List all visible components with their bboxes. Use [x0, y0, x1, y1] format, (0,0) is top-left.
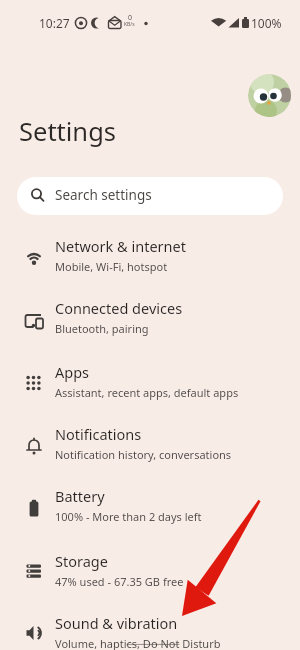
button[interactable]: Notifications — [0, 420, 300, 476]
staticText: 0 — [128, 13, 133, 23]
staticText: Battery — [55, 486, 105, 506]
button[interactable]: Search settings — [17, 177, 283, 215]
staticText: Sound & vibration — [55, 613, 178, 633]
staticText: Settings — [19, 114, 117, 149]
staticText: Connected devices — [55, 298, 183, 318]
staticText: Notification history, conversations — [55, 447, 232, 462]
staticText: Volume, haptics, Do Not Disturb — [55, 636, 221, 650]
staticText: Apps — [55, 362, 90, 382]
staticText: Mobile, Wi-Fi, hotspot — [55, 259, 168, 274]
button[interactable]: Network & internet — [0, 232, 300, 288]
staticText: 100% — [251, 15, 282, 31]
staticText: 100% - More than 2 days left — [55, 509, 202, 524]
staticText: Storage — [55, 551, 108, 571]
button[interactable]: Battery — [0, 482, 300, 538]
button[interactable]: Storage — [0, 547, 300, 603]
staticText: Bluetooth, pairing — [55, 321, 149, 336]
staticText: Search settings — [55, 186, 152, 204]
button[interactable]: Sound & vibration — [0, 609, 300, 650]
button[interactable]: Apps — [0, 358, 300, 414]
button[interactable]: Connected devices — [0, 294, 300, 350]
staticText: 10:27 — [39, 15, 70, 31]
staticText: Network & internet — [55, 236, 186, 256]
staticText: 47% used - 67.35 GB free — [55, 574, 184, 589]
staticText: Notifications — [55, 424, 142, 444]
button[interactable] — [248, 74, 291, 117]
staticText: KB/s — [124, 21, 135, 28]
staticText: Assistant, recent apps, default apps — [55, 385, 239, 400]
